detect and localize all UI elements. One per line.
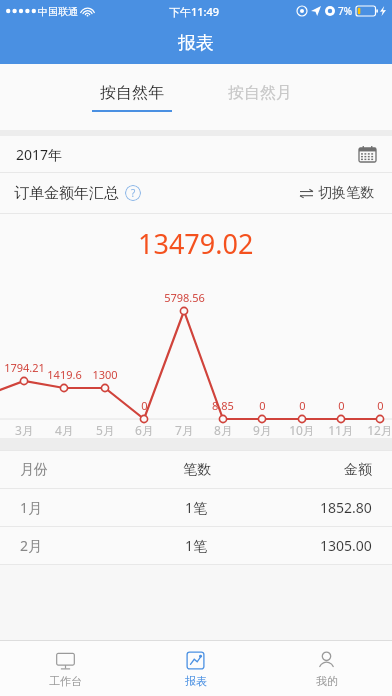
- staticText: 7月: [175, 422, 194, 438]
- button[interactable]: 按自然年: [80, 77, 184, 118]
- button[interactable]: 切换笔数: [296, 180, 378, 206]
- staticText: 1852.80: [320, 498, 372, 517]
- staticText: 12月: [367, 422, 392, 438]
- staticText: 3月: [15, 422, 34, 438]
- staticText: 月份: [20, 461, 48, 479]
- button[interactable]: 2017年: [0, 136, 392, 172]
- button[interactable]: 月份: [0, 451, 392, 488]
- staticText: 7%: [338, 4, 353, 18]
- staticText: 0: [299, 398, 306, 413]
- staticText: 1419.6: [47, 367, 82, 382]
- staticText: 1笔: [185, 536, 208, 555]
- staticText: 1月: [20, 498, 43, 517]
- button[interactable]: 报表: [130, 641, 261, 696]
- staticText: 工作台: [49, 674, 82, 688]
- other: Select date: [359, 146, 376, 162]
- staticText: 报表: [185, 674, 207, 688]
- staticText: 报表: [178, 32, 214, 55]
- staticText: 1305.00: [320, 536, 372, 555]
- staticText: 8.85: [212, 398, 234, 413]
- button[interactable]: 2月: [0, 527, 392, 564]
- staticText: 5月: [96, 422, 115, 438]
- staticText: 1笔: [185, 498, 208, 517]
- staticText: 10月: [289, 422, 315, 438]
- staticText: 下午11:49: [169, 4, 220, 19]
- staticText: 11月: [328, 422, 354, 438]
- staticText: 0: [259, 398, 266, 413]
- staticText: 按自然年: [100, 83, 164, 103]
- staticText: 4月: [55, 422, 74, 438]
- staticText: 0: [141, 398, 148, 413]
- button[interactable]: 工作台: [0, 641, 130, 696]
- staticText: 13479.02: [138, 225, 254, 262]
- staticText: 1300: [92, 367, 118, 382]
- staticText: 按自然月: [228, 83, 292, 103]
- button[interactable]: 我的: [261, 641, 392, 696]
- staticText: 2017年: [16, 145, 63, 164]
- button[interactable]: 按自然月: [208, 77, 312, 118]
- staticText: 切换笔数: [318, 184, 374, 202]
- staticText: 1794.21: [4, 360, 45, 375]
- staticText: 订单金额年汇总: [14, 184, 119, 203]
- staticText: 0: [338, 398, 345, 413]
- button[interactable]: 1月: [0, 489, 392, 526]
- staticText: 6月: [135, 422, 154, 438]
- staticText: 中国联通: [38, 5, 78, 18]
- staticText: 0: [377, 398, 384, 413]
- staticText: 5798.56: [164, 290, 205, 305]
- staticText: ?: [131, 186, 136, 200]
- staticText: 我的: [316, 674, 338, 688]
- staticText: 8月: [214, 422, 233, 438]
- staticText: 笔数: [183, 461, 211, 479]
- staticText: 金额: [344, 461, 372, 479]
- staticText: 9月: [253, 422, 272, 438]
- button[interactable]: Help: [125, 185, 141, 201]
- staticText: 2月: [20, 536, 43, 555]
